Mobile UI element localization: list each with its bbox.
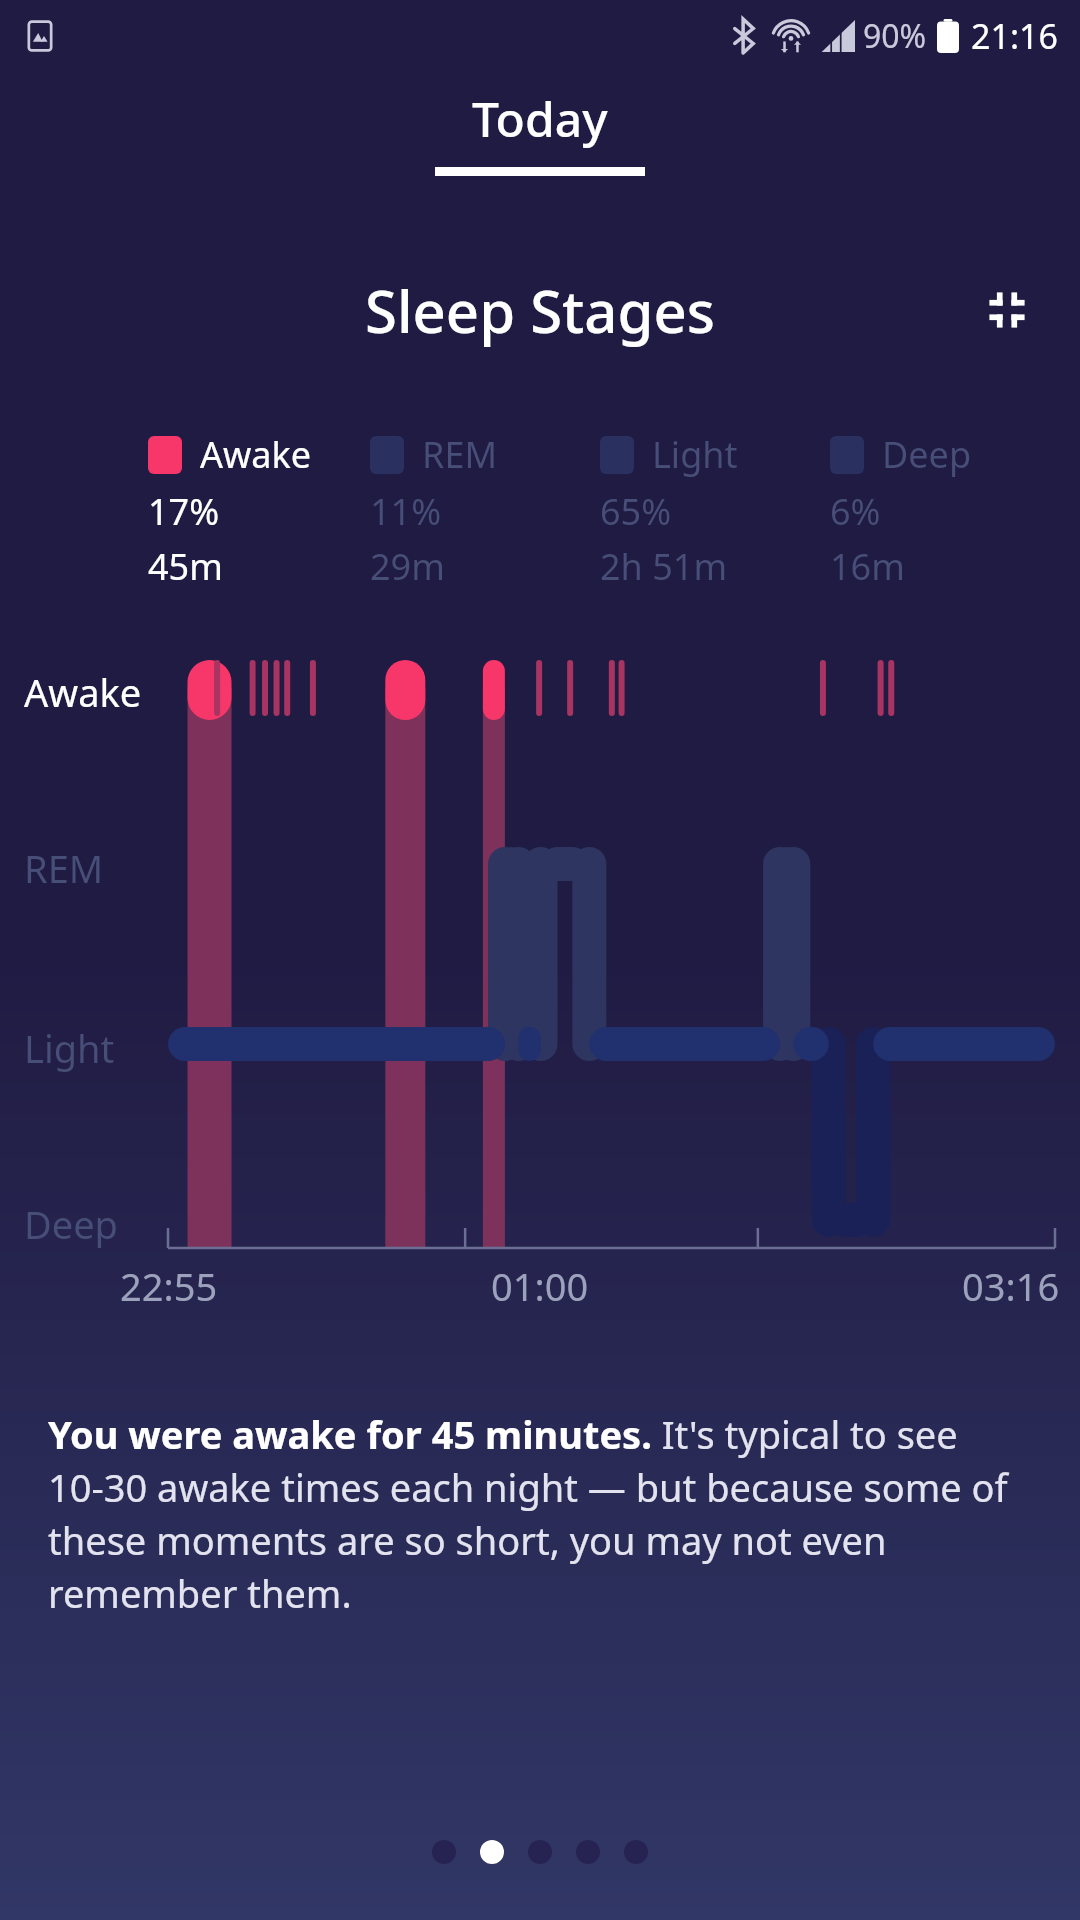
button[interactable]: Page 2	[480, 1840, 504, 1864]
button[interactable]: Today	[435, 86, 645, 176]
button[interactable]: Page 3	[528, 1840, 552, 1864]
button[interactable]: Page 1	[432, 1840, 456, 1864]
staticText: 65%	[600, 487, 672, 536]
staticText: Today	[472, 86, 608, 151]
button[interactable]: Collapse chart	[970, 273, 1044, 347]
staticText: Sleep Stages	[365, 271, 715, 350]
staticText: Awake	[24, 666, 142, 718]
staticText: Deep	[882, 430, 972, 479]
staticText: Light	[24, 1022, 115, 1074]
staticText: 29m	[370, 542, 445, 591]
staticText: Awake	[200, 430, 312, 479]
staticText: Deep	[24, 1198, 118, 1250]
button[interactable]: Awake	[148, 430, 370, 591]
button[interactable]: REM	[370, 430, 600, 591]
button[interactable]: Light	[600, 430, 830, 591]
staticText: 16m	[830, 542, 905, 591]
staticText: 11%	[370, 487, 442, 536]
staticText: 03:16	[962, 1260, 1060, 1312]
staticText: You were awake for 45 minutes. It's typi…	[48, 1408, 1040, 1619]
staticText: Light	[652, 430, 738, 479]
staticText: 90%	[863, 14, 927, 58]
staticText: 6%	[830, 487, 881, 536]
staticText: 2h 51m	[600, 542, 728, 591]
staticText: REM	[422, 430, 498, 479]
button[interactable]: Page 4	[576, 1840, 600, 1864]
button[interactable]: Deep	[830, 430, 1060, 591]
staticText: 17%	[148, 487, 220, 536]
staticText: REM	[24, 842, 104, 894]
staticText: 45m	[148, 542, 223, 591]
staticText: 21:16	[971, 13, 1058, 59]
staticText: 22:55	[120, 1260, 218, 1312]
button[interactable]: Page 5	[624, 1840, 648, 1864]
staticText: 01:00	[491, 1260, 589, 1312]
